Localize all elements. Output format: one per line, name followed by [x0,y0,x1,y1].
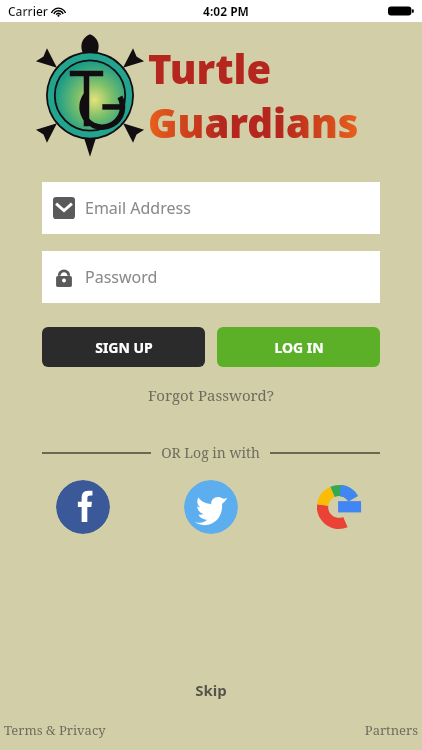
button[interactable]: Log in with Google [312,480,366,534]
staticText: Guardians [148,95,359,149]
button[interactable]: Partners [362,718,420,742]
staticText: Email Address [85,197,191,219]
staticText: Carrier [8,3,48,19]
staticText: Turtle [148,41,272,95]
button[interactable]: Skip [0,676,422,704]
staticText: Password [85,266,158,288]
staticText: Forgot Password? [0,385,422,405]
staticText: OR Log in with [161,443,260,462]
staticText: LOG IN [274,338,324,357]
button[interactable]: Log in with Facebook [56,480,110,534]
staticText: 4:02 PM [203,3,249,19]
staticText: SIGN UP [95,338,153,357]
button[interactable]: Log in with Twitter [184,480,238,534]
button[interactable]: Email Address [42,182,380,234]
staticText: Terms & Privacy [4,721,106,739]
button[interactable]: SIGN UP [42,327,205,367]
button[interactable]: LOG IN [217,327,380,367]
button[interactable]: Password [42,251,380,303]
staticText: Partners [364,721,418,739]
button[interactable]: Terms & Privacy [2,718,108,742]
